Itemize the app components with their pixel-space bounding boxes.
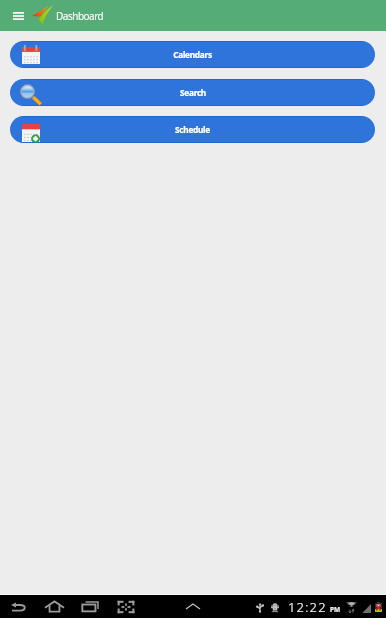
- button[interactable]: Calendars: [10, 41, 375, 68]
- staticText: Dashboard: [56, 9, 104, 23]
- button[interactable]: Screenshot: [108, 595, 144, 618]
- button[interactable]: Home: [36, 595, 72, 618]
- staticText: PM: [330, 605, 341, 614]
- staticText: 12:22: [288, 598, 327, 616]
- button[interactable]: Search: [10, 79, 375, 106]
- button[interactable]: Schedule: [10, 116, 375, 143]
- staticText: Search: [180, 87, 206, 98]
- button[interactable]: Back: [0, 595, 36, 618]
- staticText: Schedule: [175, 124, 210, 135]
- button[interactable]: Recent apps: [72, 595, 108, 618]
- button[interactable]: Expand: [175, 595, 211, 618]
- staticText: Calendars: [173, 49, 212, 60]
- button[interactable]: Open navigation menu: [6, 4, 30, 28]
